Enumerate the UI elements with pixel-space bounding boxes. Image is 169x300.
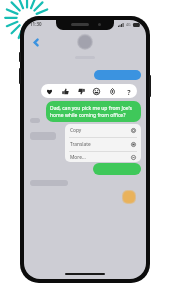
button[interactable]: Thumbs down reaction bbox=[78, 88, 85, 95]
staticText: Copy bbox=[70, 127, 82, 134]
button[interactable]: Question reaction bbox=[125, 88, 132, 95]
staticText: 4G bbox=[126, 22, 131, 27]
staticText: More... bbox=[70, 154, 86, 161]
button[interactable]: Back bbox=[32, 38, 41, 47]
staticText: Dad, can you pick me up from Joe's home … bbox=[50, 105, 137, 119]
button[interactable]: More... bbox=[65, 152, 141, 162]
button[interactable]: Love reaction bbox=[46, 88, 53, 95]
button[interactable]: Sad reaction bbox=[109, 88, 116, 95]
staticText: Translate bbox=[70, 141, 91, 148]
staticText: ? bbox=[127, 88, 131, 95]
button[interactable]: Dad, can you pick me up from Joe's home … bbox=[46, 101, 141, 122]
staticText: 11:30 bbox=[30, 21, 42, 27]
button[interactable]: Translate bbox=[65, 138, 141, 151]
button[interactable]: Laugh reaction bbox=[93, 88, 100, 95]
button[interactable]: Copy bbox=[65, 124, 141, 137]
button[interactable]: Thumbs up reaction bbox=[62, 88, 69, 95]
